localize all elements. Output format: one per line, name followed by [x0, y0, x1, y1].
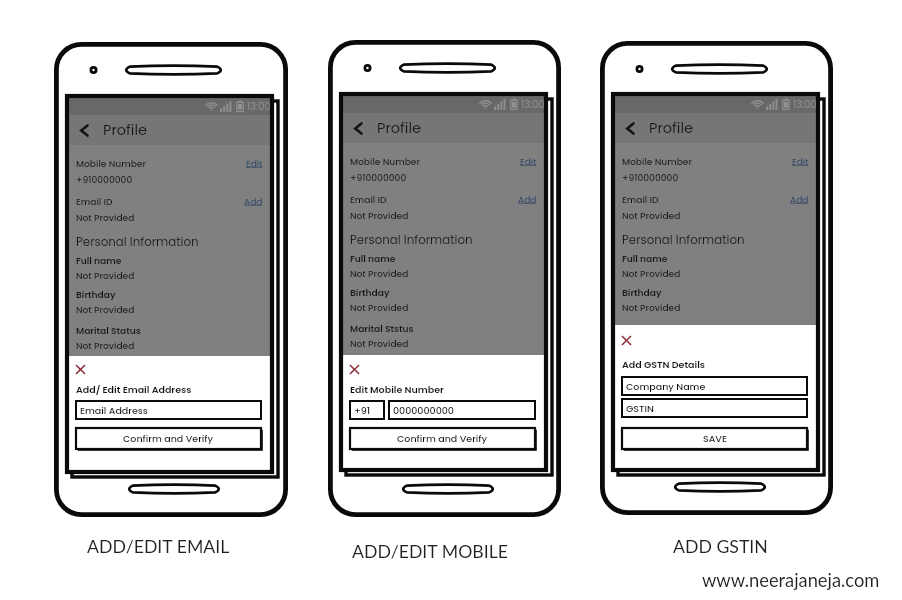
- staticText: Personal Information: [76, 234, 199, 251]
- staticText: Birthday: [350, 286, 390, 299]
- button[interactable]: Email ID: [76, 195, 263, 208]
- button[interactable]: GSTIN: [622, 399, 807, 417]
- staticText: Not Provided: [622, 267, 681, 280]
- staticText: Not Provided: [350, 337, 409, 350]
- staticText: Birthday: [76, 288, 116, 301]
- staticText: ADD/EDIT EMAIL: [87, 536, 230, 557]
- button[interactable]: Mobile Number: [350, 155, 537, 168]
- staticText: Email ID: [76, 195, 113, 208]
- staticText: Email ID: [622, 193, 659, 206]
- button[interactable]: Confirm and Verify: [350, 428, 535, 449]
- staticText: SAVE: [703, 432, 727, 445]
- button[interactable]: Back: [67, 115, 272, 145]
- button[interactable]: Back: [623, 121, 638, 136]
- staticText: +910000000: [622, 171, 679, 184]
- staticText: Profile: [377, 118, 421, 138]
- staticText: Marital Status: [76, 324, 141, 337]
- staticText: Mobile Number: [350, 155, 420, 168]
- staticText: Profile: [649, 118, 693, 138]
- button[interactable]: Back: [351, 121, 366, 136]
- staticText: Personal Information: [622, 232, 745, 249]
- staticText: Mobile Number: [76, 157, 146, 170]
- staticText: Add: [790, 193, 809, 206]
- staticText: Not Provided: [76, 303, 135, 316]
- staticText: Not Provided: [76, 269, 135, 282]
- staticText: Birthday: [622, 286, 662, 299]
- staticText: www.neerajaneja.com: [702, 569, 880, 591]
- button[interactable]: Close: [622, 336, 631, 345]
- staticText: Full name: [622, 252, 668, 265]
- staticText: Not Provided: [622, 301, 681, 314]
- button[interactable]: Close: [350, 365, 359, 374]
- staticText: 13:00: [793, 97, 817, 111]
- button[interactable]: Back: [613, 113, 818, 143]
- staticText: GSTIN: [626, 402, 654, 415]
- staticText: Email ID: [350, 193, 387, 206]
- button[interactable]: Email ID: [622, 193, 809, 206]
- button[interactable]: Confirm and Verify: [76, 428, 261, 449]
- staticText: Edit: [792, 155, 809, 168]
- staticText: Edit Mobile Number: [350, 383, 444, 396]
- staticText: ADD/EDIT MOBILE: [352, 541, 508, 562]
- button[interactable]: Email ID: [350, 193, 537, 206]
- staticText: Email Address: [80, 404, 148, 417]
- staticText: Edit: [520, 155, 537, 168]
- staticText: Personal Information: [350, 232, 473, 249]
- button[interactable]: Close: [76, 365, 85, 374]
- staticText: Mobile Number: [622, 155, 692, 168]
- staticText: Not Provided: [350, 301, 409, 314]
- staticText: +91: [354, 404, 371, 417]
- staticText: Not Provided: [350, 267, 409, 280]
- staticText: Add GSTN Details: [622, 358, 706, 371]
- staticText: Marital Ststus: [350, 322, 414, 335]
- staticText: Full name: [350, 252, 396, 265]
- staticText: Not Provided: [622, 209, 681, 222]
- staticText: Edit: [246, 157, 263, 170]
- button[interactable]: 0000000000: [389, 401, 535, 419]
- button[interactable]: +91: [350, 401, 384, 419]
- staticText: 13:00: [521, 97, 545, 111]
- staticText: Not Provided: [76, 211, 135, 224]
- staticText: Company Name: [626, 380, 706, 393]
- staticText: Confirm and Verify: [397, 432, 488, 445]
- staticText: Confirm and Verify: [123, 432, 214, 445]
- button[interactable]: Mobile Number: [622, 155, 809, 168]
- staticText: Add/ Edit Email Address: [76, 383, 192, 396]
- staticText: Profile: [103, 120, 147, 140]
- button[interactable]: SAVE: [622, 428, 807, 449]
- button[interactable]: Company Name: [622, 377, 807, 395]
- button[interactable]: Mobile Number: [76, 157, 263, 170]
- staticText: Full name: [76, 254, 122, 267]
- staticText: +910000000: [76, 173, 133, 186]
- staticText: 13:00: [247, 99, 271, 113]
- staticText: Not Provided: [350, 209, 409, 222]
- staticText: 0000000000: [393, 404, 454, 417]
- button[interactable]: Back: [341, 113, 546, 143]
- button[interactable]: Back: [77, 123, 92, 138]
- staticText: Add: [244, 195, 263, 208]
- button[interactable]: Email Address: [76, 401, 261, 419]
- staticText: Add: [518, 193, 537, 206]
- staticText: Not Provided: [76, 339, 135, 352]
- staticText: +910000000: [350, 171, 407, 184]
- staticText: ADD GSTIN: [673, 536, 768, 557]
